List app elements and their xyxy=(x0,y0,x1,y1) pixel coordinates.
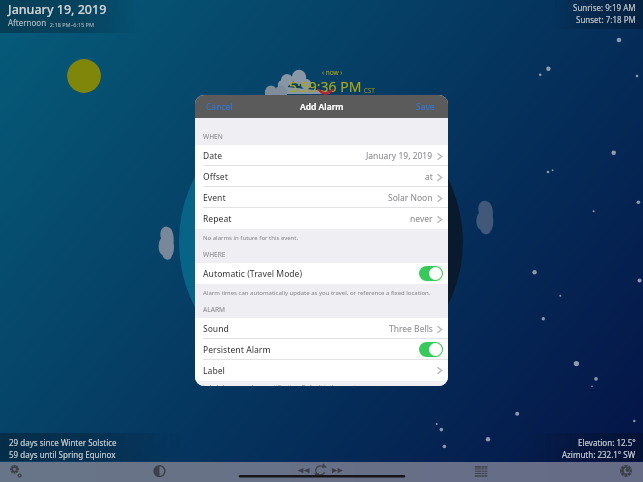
staticText: Label xyxy=(203,365,225,377)
staticText: Save xyxy=(416,101,435,113)
button[interactable]: Event xyxy=(195,187,448,208)
staticText: Date xyxy=(203,150,223,162)
staticText: Offset xyxy=(203,171,228,183)
staticText: ALARM xyxy=(203,305,225,314)
staticText: Afternoon xyxy=(8,17,47,28)
button[interactable]: Label xyxy=(195,360,448,381)
staticText: Sunrise: 9:19 AM xyxy=(573,2,636,13)
button[interactable]: Persistent Alarm xyxy=(195,339,448,360)
staticText: Azimuth: 232.1° SW xyxy=(562,449,636,460)
button[interactable]: Date xyxy=(195,145,448,166)
staticText: Label shown on alarm notification. Defau… xyxy=(203,383,376,386)
staticText: 29 days since Winter Solstice xyxy=(9,437,117,448)
staticText: Solar Noon xyxy=(388,192,433,204)
button[interactable]: Reset to now xyxy=(314,462,328,482)
staticText: 5:59:36 PM xyxy=(289,77,362,96)
staticText: Sound xyxy=(203,323,229,335)
staticText: Cancel xyxy=(206,101,233,113)
button[interactable]: Repeat xyxy=(195,208,448,229)
button[interactable]: Save xyxy=(398,95,448,118)
staticText: 2:18 PM–6:15 PM xyxy=(47,21,94,28)
button[interactable]: Cancel xyxy=(195,95,251,118)
button[interactable]: Settings xyxy=(4,462,28,482)
staticText: WHEN xyxy=(203,132,223,141)
button[interactable]: Sun and moon xyxy=(616,462,638,482)
staticText: No alarms in future for this event. xyxy=(203,234,299,242)
staticText: January 19, 2019 xyxy=(366,150,433,162)
staticText: Event xyxy=(203,192,226,204)
staticText: Automatic (Travel Mode) xyxy=(203,268,303,280)
button[interactable]: Sound xyxy=(195,318,448,339)
button[interactable]: Contrast xyxy=(149,462,171,482)
button[interactable]: Step backward xyxy=(293,462,315,482)
staticText: ‹ now › xyxy=(322,68,343,77)
button[interactable]: Automatic (Travel Mode) xyxy=(195,263,448,284)
staticText: Persistent Alarm xyxy=(203,344,271,356)
staticText: Alarm times can automatically update as … xyxy=(203,289,431,297)
staticText: Three Bells xyxy=(389,323,433,335)
staticText: Sunset: 7:18 PM xyxy=(576,14,636,25)
button[interactable]: Offset xyxy=(195,166,448,187)
staticText: WHERE xyxy=(203,250,226,259)
button[interactable]: Calendar xyxy=(469,462,493,482)
button[interactable]: Step forward xyxy=(329,462,349,482)
staticText: 59 days until Spring Equinox xyxy=(9,449,116,460)
staticText: CST xyxy=(362,86,375,95)
staticText: Elevation: 12.5° xyxy=(578,437,636,448)
staticText: at xyxy=(425,171,433,183)
staticText: Add Alarm xyxy=(300,101,344,113)
staticText: January 19, 2019 xyxy=(8,1,107,18)
staticText: never xyxy=(410,213,433,225)
staticText: Repeat xyxy=(203,213,232,225)
